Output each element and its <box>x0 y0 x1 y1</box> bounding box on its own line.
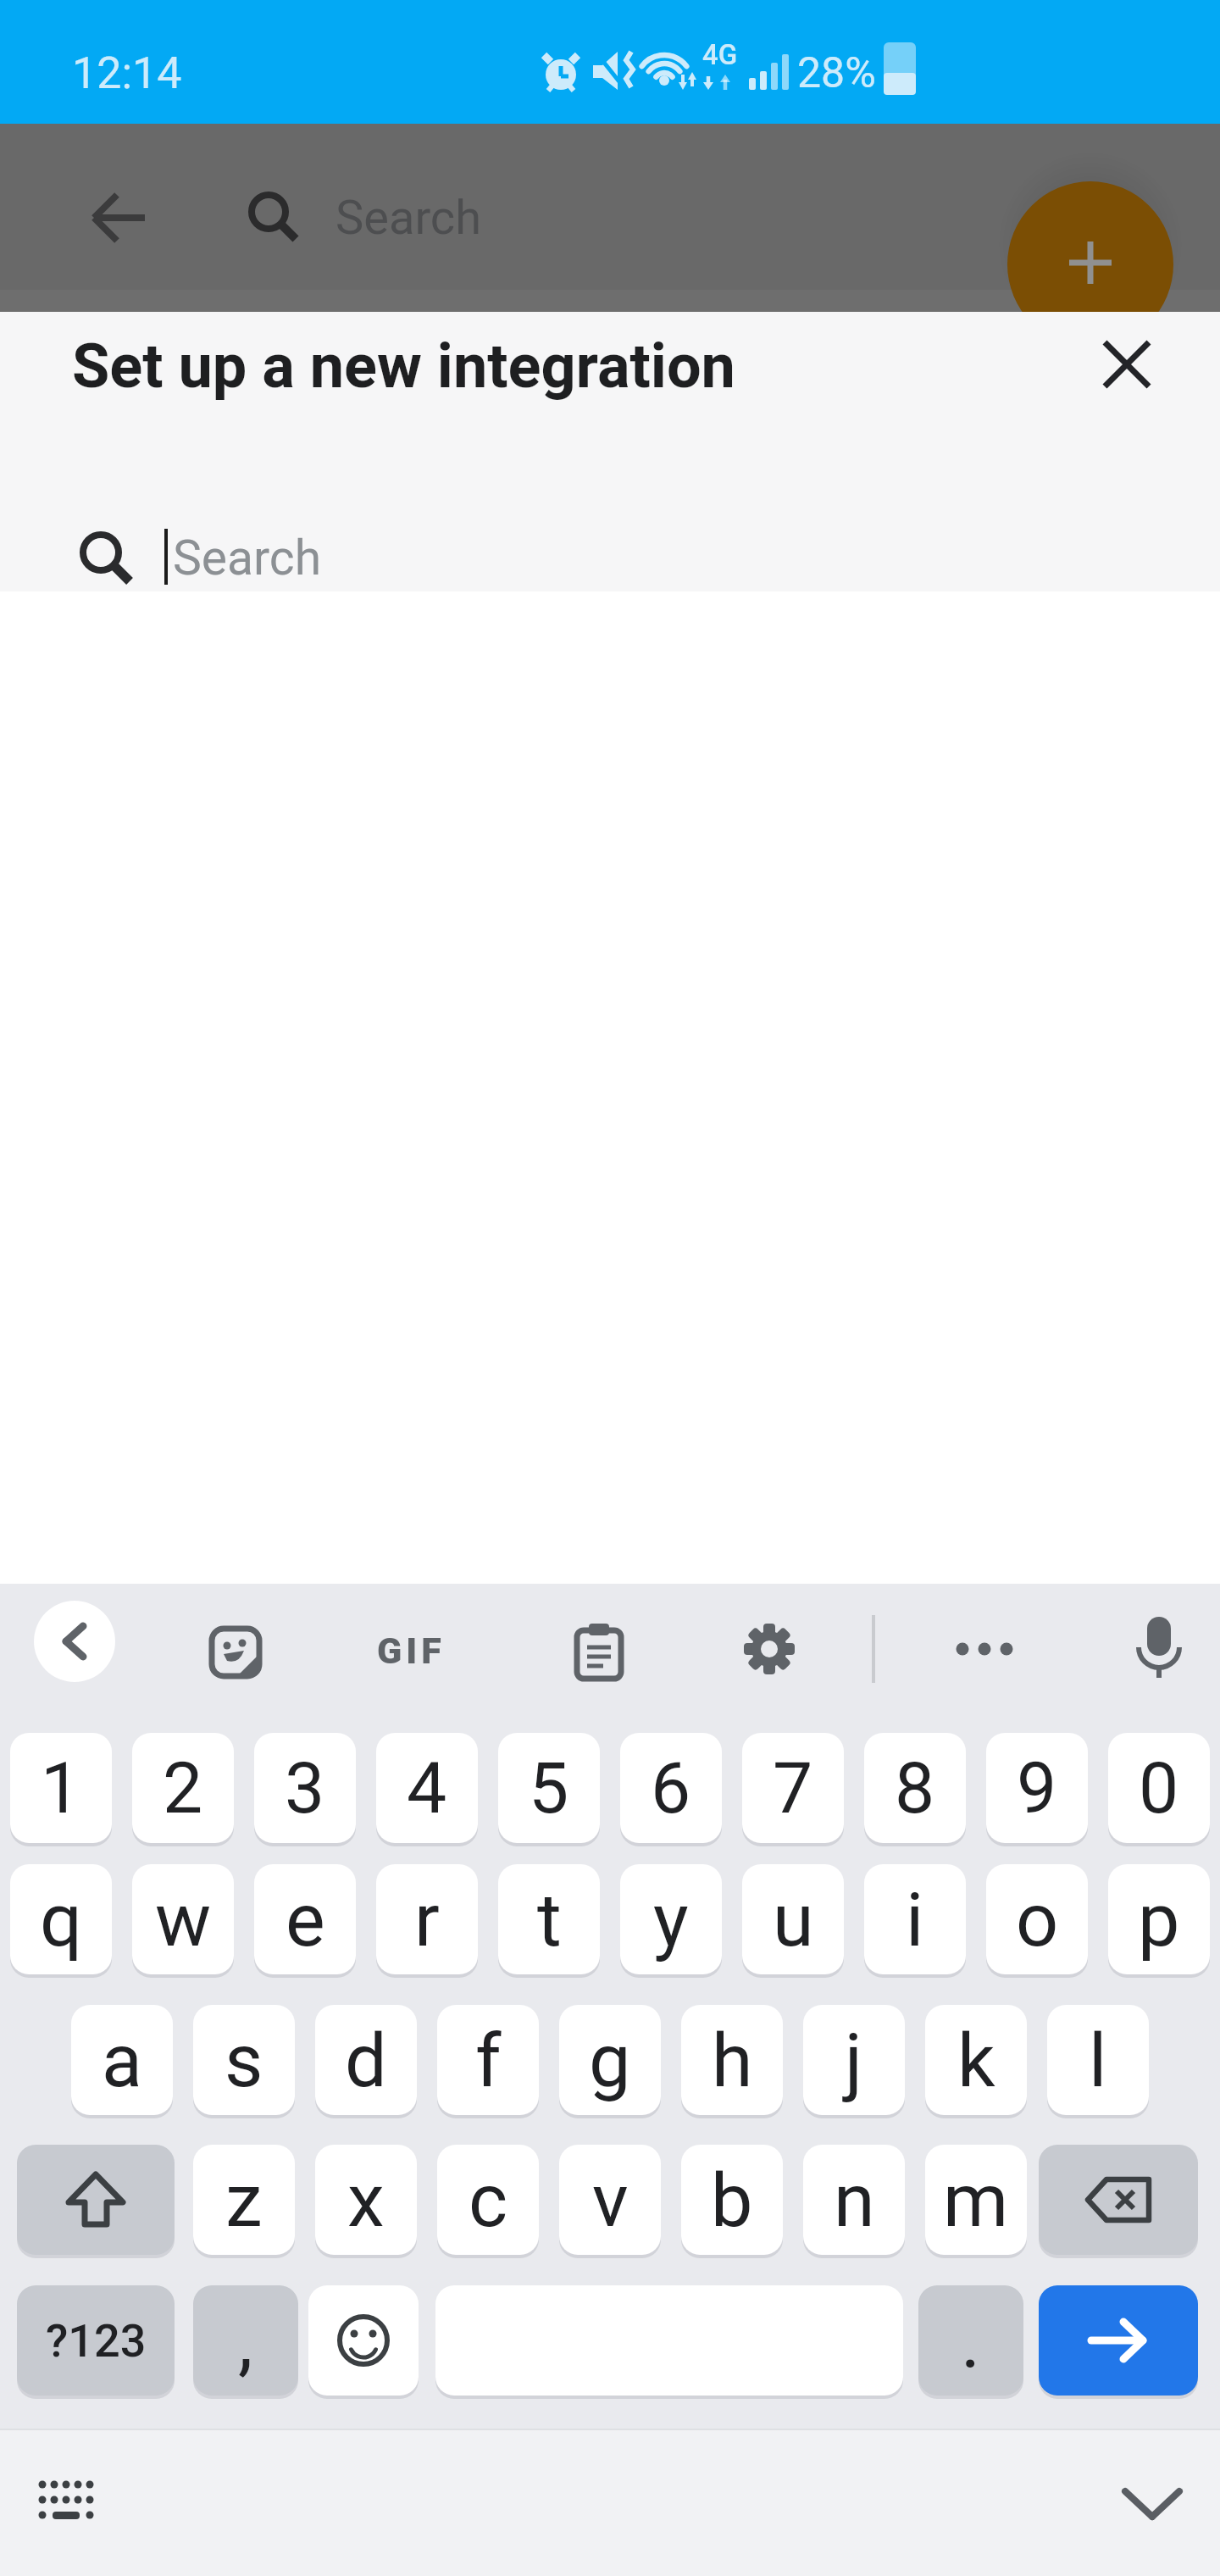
staticText: y <box>653 1876 689 1963</box>
button[interactable] <box>1118 2481 1186 2529</box>
button[interactable]: a <box>71 2005 173 2115</box>
staticText: u <box>773 1876 814 1963</box>
button[interactable]: 0 <box>1108 1733 1210 1843</box>
button[interactable]: q <box>10 1864 112 1974</box>
button[interactable]: g <box>559 2005 661 2115</box>
staticText: n <box>834 2157 875 2244</box>
button[interactable]: 2 <box>132 1733 234 1843</box>
button[interactable]: h <box>681 2005 783 2115</box>
staticText: 2 <box>163 1746 203 1829</box>
staticText: 9 <box>1017 1746 1057 1829</box>
button[interactable] <box>1007 181 1173 347</box>
staticText: z <box>225 2157 263 2244</box>
button[interactable]: e <box>254 1864 356 1974</box>
button[interactable]: Search <box>335 188 590 247</box>
button[interactable]: 5 <box>498 1733 600 1843</box>
button[interactable]: c <box>437 2145 539 2255</box>
button[interactable]: s <box>193 2005 295 2115</box>
button[interactable] <box>574 1624 624 1681</box>
staticText: 8 <box>895 1746 935 1829</box>
button[interactable]: z <box>193 2145 295 2255</box>
staticText: h <box>712 2017 753 2104</box>
staticText: q <box>40 1876 83 1963</box>
staticText: t <box>537 1876 562 1963</box>
button[interactable]: 1 <box>10 1733 112 1843</box>
staticText: m <box>943 2157 1009 2244</box>
staticText: ?123 <box>46 2314 147 2368</box>
button[interactable]: x <box>315 2145 417 2255</box>
button[interactable] <box>34 1601 115 1682</box>
staticText: a <box>102 2017 142 2104</box>
button[interactable]: p <box>1108 1864 1210 1974</box>
button[interactable]: b <box>681 2145 783 2255</box>
button[interactable]: o <box>986 1864 1088 1974</box>
button[interactable]: k <box>925 2005 1027 2115</box>
staticText: e <box>286 1876 325 1963</box>
button[interactable]: i <box>864 1864 966 1974</box>
button[interactable]: 8 <box>864 1733 966 1843</box>
button[interactable] <box>17 2145 175 2255</box>
button[interactable]: 4 <box>376 1733 478 1843</box>
staticText: g <box>589 2017 631 2104</box>
button[interactable]: m <box>925 2145 1027 2255</box>
staticText: i <box>906 1876 924 1963</box>
staticText: c <box>469 2157 508 2244</box>
staticText: 12:14 <box>72 47 182 99</box>
staticText: f <box>475 2017 502 2104</box>
button[interactable]: n <box>803 2145 905 2255</box>
button[interactable]: , <box>193 2285 298 2396</box>
staticText: w <box>155 1876 212 1963</box>
button[interactable]: y <box>620 1864 722 1974</box>
button[interactable] <box>1091 329 1162 400</box>
button[interactable] <box>77 175 162 260</box>
button[interactable] <box>1137 1617 1181 1681</box>
button[interactable]: 6 <box>620 1733 722 1843</box>
button[interactable] <box>1039 2285 1198 2396</box>
button[interactable]: r <box>376 1864 478 1974</box>
button[interactable]: f <box>437 2005 539 2115</box>
staticText: . <box>961 2297 981 2384</box>
staticText: x <box>347 2157 385 2244</box>
button[interactable] <box>742 1622 796 1676</box>
button[interactable]: . <box>918 2285 1023 2396</box>
button[interactable]: w <box>132 1864 234 1974</box>
staticText: k <box>957 2017 995 2104</box>
button[interactable]: t <box>498 1864 600 1974</box>
button[interactable]: ?123 <box>17 2285 175 2396</box>
button[interactable]: j <box>803 2005 905 2115</box>
staticText: Search <box>335 190 482 246</box>
staticText: 28% <box>797 48 876 98</box>
staticText: s <box>225 2017 263 2104</box>
staticText: 6 <box>651 1746 691 1829</box>
button[interactable]: l <box>1047 2005 1149 2115</box>
staticText: l <box>1089 2017 1107 2104</box>
staticText: Set up a new integration <box>72 330 735 402</box>
staticText: p <box>1138 1876 1180 1963</box>
button[interactable] <box>956 1637 1013 1661</box>
button[interactable]: 7 <box>742 1733 844 1843</box>
staticText: , <box>238 2297 253 2384</box>
staticText: v <box>592 2157 629 2244</box>
button[interactable] <box>1039 2145 1198 2255</box>
button[interactable]: u <box>742 1864 844 1974</box>
button[interactable]: GIF <box>360 1629 462 1673</box>
staticText: GIF <box>377 1629 446 1672</box>
staticText: o <box>1016 1876 1059 1963</box>
staticText: 3 <box>285 1746 325 1829</box>
staticText: 4 <box>407 1746 447 1829</box>
button[interactable] <box>36 2476 97 2529</box>
staticText: j <box>845 2017 863 2104</box>
button[interactable] <box>208 1625 263 1679</box>
staticText: 7 <box>773 1746 813 1829</box>
button[interactable] <box>308 2285 419 2396</box>
button[interactable]: Search <box>173 528 512 587</box>
staticText: 5 <box>529 1746 569 1829</box>
staticText: Search <box>173 530 322 586</box>
button[interactable]: 9 <box>986 1733 1088 1843</box>
button[interactable]: d <box>315 2005 417 2115</box>
staticText: 4G <box>702 38 738 71</box>
button[interactable]: 3 <box>254 1733 356 1843</box>
staticText: b <box>711 2157 753 2244</box>
button[interactable]: v <box>559 2145 661 2255</box>
